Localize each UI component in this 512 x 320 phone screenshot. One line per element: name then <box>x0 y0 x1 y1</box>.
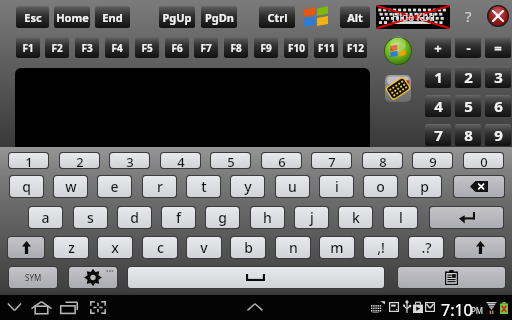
button[interactable]: l <box>384 207 417 228</box>
button[interactable]: F4 <box>105 37 129 58</box>
button[interactable]: PgDn <box>201 6 237 28</box>
button[interactable]: 8 <box>455 124 481 146</box>
staticText: x <box>111 238 119 257</box>
button[interactable]: 8 <box>363 153 402 168</box>
button[interactable]: b <box>231 237 265 258</box>
button[interactable]: y <box>231 176 264 197</box>
button[interactable]: u <box>276 176 309 197</box>
button[interactable]: + <box>425 37 451 58</box>
button[interactable]: Ctrl <box>259 6 295 28</box>
button[interactable]: F8 <box>224 37 248 58</box>
button[interactable]: F3 <box>75 37 99 58</box>
button[interactable]: j <box>295 207 328 228</box>
button[interactable]: Back <box>7 302 22 312</box>
button[interactable]: 7 <box>312 153 351 168</box>
button[interactable]: Enter <box>430 207 503 228</box>
button[interactable]: Switch keyboard <box>385 75 411 102</box>
staticText: 1 <box>434 67 443 87</box>
button[interactable]: n <box>276 237 310 258</box>
button[interactable]: w <box>54 176 87 197</box>
staticText: PM <box>471 305 484 314</box>
staticText: = <box>494 39 502 57</box>
button[interactable] <box>128 267 384 288</box>
button[interactable]: ,! <box>364 237 398 258</box>
button[interactable]: Close <box>487 5 509 27</box>
button[interactable]: f <box>162 207 195 228</box>
button[interactable]: = <box>485 37 511 58</box>
button[interactable]: d <box>118 207 151 228</box>
button[interactable]: Expand <box>247 303 263 311</box>
button[interactable]: .? <box>409 237 443 258</box>
button[interactable]: F5 <box>135 37 159 58</box>
staticText: 2 <box>464 67 473 87</box>
button[interactable]: 3 <box>110 153 149 168</box>
button[interactable]: 9 <box>413 153 452 168</box>
button[interactable]: g <box>206 207 239 228</box>
button[interactable]: PgUp <box>159 6 195 28</box>
button[interactable]: p <box>408 176 441 197</box>
button[interactable]: 0 <box>464 153 503 168</box>
button[interactable]: k <box>339 207 372 228</box>
button[interactable]: 1 <box>425 66 451 88</box>
button[interactable]: F12 <box>343 37 367 58</box>
button[interactable]: m <box>320 237 354 258</box>
button[interactable]: 7 <box>425 124 451 146</box>
button[interactable]: F10 <box>284 37 308 58</box>
button[interactable]: Hide keyboard <box>376 5 450 29</box>
button[interactable]: F6 <box>165 37 189 58</box>
button[interactable]: 6 <box>485 95 511 117</box>
button[interactable]: 2 <box>60 153 99 168</box>
button[interactable]: Backspace <box>454 176 504 197</box>
button[interactable]: F9 <box>254 37 278 58</box>
button[interactable]: Shift <box>455 237 505 258</box>
button[interactable]: 9 <box>485 124 511 146</box>
button[interactable]: e <box>98 176 131 197</box>
button[interactable]: Esc <box>16 6 49 28</box>
button[interactable]: 5 <box>455 95 481 117</box>
button[interactable]: v <box>187 237 221 258</box>
button[interactable]: F11 <box>314 37 338 58</box>
staticText: n <box>289 238 298 257</box>
button[interactable]: Shift <box>8 237 44 258</box>
button[interactable]: t <box>187 176 220 197</box>
button[interactable]: Recents <box>60 300 78 314</box>
button[interactable]: Symbols <box>9 267 57 288</box>
staticText: 5 <box>464 96 473 116</box>
button[interactable]: r <box>143 176 176 197</box>
button[interactable]: 3 <box>485 66 511 88</box>
button[interactable]: Clipboard <box>398 267 505 288</box>
button[interactable]: 2 <box>455 66 481 88</box>
button[interactable]: 4 <box>425 95 451 117</box>
button[interactable]: Home <box>54 6 90 28</box>
button[interactable]: x <box>98 237 132 258</box>
button[interactable]: Help <box>456 3 480 29</box>
staticText: 5 <box>227 153 235 168</box>
button[interactable]: c <box>143 237 177 258</box>
button[interactable]: i <box>320 176 353 197</box>
button[interactable]: 6 <box>262 153 301 168</box>
button[interactable]: a <box>29 207 62 228</box>
button[interactable]: Alt <box>340 6 370 28</box>
button[interactable]: F2 <box>45 37 69 58</box>
button[interactable]: F7 <box>194 37 218 58</box>
button[interactable]: s <box>74 207 107 228</box>
staticText: g <box>218 208 227 227</box>
button[interactable]: h <box>251 207 284 228</box>
button[interactable]: z <box>54 237 88 258</box>
button[interactable]: - <box>455 37 481 58</box>
button[interactable]: Start <box>384 37 412 65</box>
button[interactable]: 1 <box>9 153 48 168</box>
button[interactable]: Fullscreen <box>90 301 106 314</box>
button[interactable]: 5 <box>211 153 250 168</box>
staticText: Esc <box>24 10 42 25</box>
button[interactable]: Settings <box>69 267 117 288</box>
staticText: Home <box>56 10 89 25</box>
button[interactable]: F1 <box>16 37 40 58</box>
button[interactable]: Windows key <box>303 5 329 27</box>
button[interactable]: Home <box>31 301 52 314</box>
button[interactable]: q <box>10 176 43 197</box>
button[interactable]: End <box>95 6 130 28</box>
button[interactable]: 4 <box>161 153 200 168</box>
button[interactable]: o <box>364 176 397 197</box>
